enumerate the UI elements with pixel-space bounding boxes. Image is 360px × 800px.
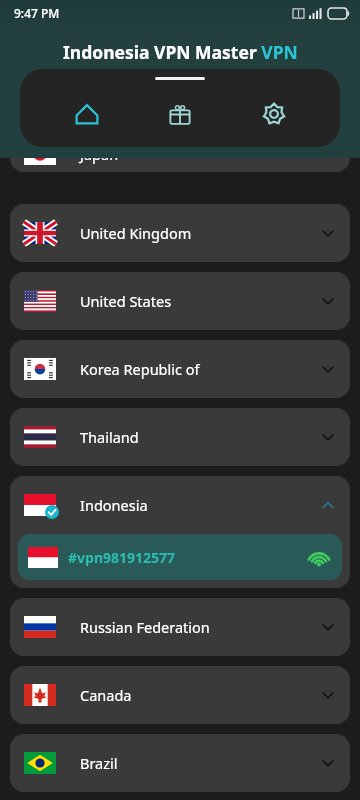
button[interactable]: United States: [10, 272, 350, 330]
button[interactable]: Settings: [247, 87, 301, 141]
staticText: Indonesia: [80, 495, 148, 515]
staticText: Thailand: [80, 427, 139, 447]
staticText: United Kingdom: [80, 223, 192, 243]
button[interactable]: Home: [60, 87, 114, 141]
button[interactable]: Thailand: [10, 408, 350, 466]
staticText: Russian Federation: [80, 617, 210, 637]
button[interactable]: #vpn981912577: [18, 534, 342, 580]
staticText: 9:47 PM: [14, 5, 60, 21]
staticText: Canada: [80, 685, 132, 705]
button[interactable]: United Kingdom: [10, 204, 350, 262]
staticText: Japan: [80, 158, 119, 164]
staticText: United States: [80, 291, 172, 311]
button[interactable]: Canada: [10, 666, 350, 724]
button[interactable]: Indonesia: [10, 476, 350, 534]
button[interactable]: Korea Republic of: [10, 340, 350, 398]
staticText: Korea Republic of: [80, 359, 200, 379]
button[interactable]: Brazil: [10, 734, 350, 792]
button[interactable]: Rewards: [153, 87, 207, 141]
staticText: #vpn981912577: [68, 548, 176, 567]
staticText: Indonesia VPN Master VPN: [63, 40, 298, 64]
staticText: Brazil: [80, 753, 118, 773]
button[interactable]: Japan: [10, 158, 350, 172]
button[interactable]: Russian Federation: [10, 598, 350, 656]
